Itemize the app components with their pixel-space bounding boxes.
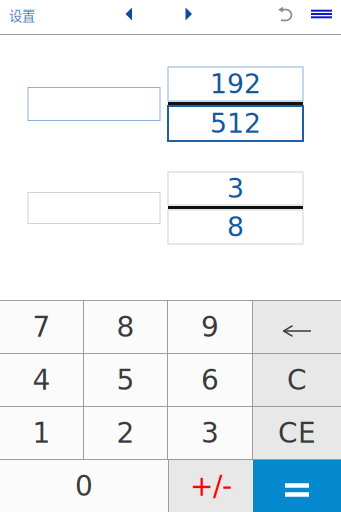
button[interactable]: 5 [84,354,167,406]
button[interactable] [28,192,160,223]
button[interactable]: C [253,354,341,406]
staticText: 9 [201,311,219,343]
button[interactable]: 512 [168,106,303,141]
staticText: 3 [227,173,244,204]
staticText: 设置 [9,5,35,25]
staticText: 6 [201,364,219,396]
staticText: 8 [116,311,134,343]
button[interactable]: 3 [168,407,252,459]
button[interactable]: 4 [0,354,83,406]
staticText: 8 [227,211,244,242]
button[interactable]: +/- [169,460,253,512]
button[interactable]: 3 [168,172,303,205]
button[interactable]: 2 [84,407,167,459]
staticText: 3 [201,417,219,449]
button[interactable]: 0 [0,460,168,512]
staticText: 1 [32,417,50,449]
button[interactable]: Backspace [253,301,341,353]
button[interactable]: 6 [168,354,252,406]
button[interactable]: Menu [306,0,337,31]
button[interactable] [28,87,160,120]
button[interactable]: Equals [253,460,341,512]
staticText: C [287,364,307,396]
button[interactable]: 8 [84,301,167,353]
staticText: 512 [210,108,261,139]
staticText: 5 [116,364,134,396]
button[interactable]: 192 [168,67,303,101]
button[interactable]: Next [176,0,202,31]
button[interactable]: Previous [116,0,142,31]
button[interactable]: CE [253,407,341,459]
staticText: 192 [210,68,261,99]
button[interactable]: 7 [0,301,83,353]
button[interactable]: 1 [0,407,83,459]
button[interactable]: 设置 [0,0,49,32]
button[interactable]: 8 [168,210,303,244]
button[interactable]: Undo [270,0,300,32]
staticText: 0 [75,470,93,502]
staticText: +/- [190,470,232,502]
staticText: CE [278,417,316,449]
staticText: 2 [116,417,134,449]
button[interactable]: 9 [168,301,252,353]
staticText: 7 [32,311,50,343]
staticText: 4 [32,364,50,396]
